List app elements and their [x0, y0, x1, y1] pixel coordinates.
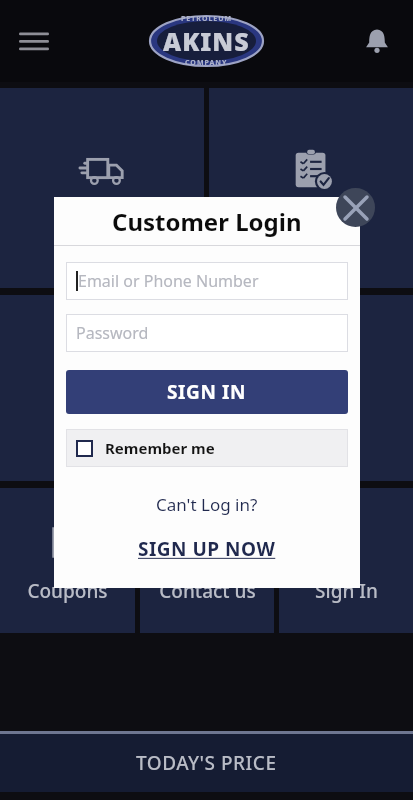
- button[interactable]: Notifications: [355, 19, 399, 63]
- button[interactable]: TODAY'S PRICE: [0, 734, 413, 792]
- button[interactable]: Delivery: [209, 88, 413, 288]
- staticText: Email or Phone Number: [78, 270, 259, 292]
- staticText: Remember me: [105, 438, 215, 458]
- button[interactable]: Remember me: [66, 429, 348, 467]
- staticText: Password: [76, 322, 149, 344]
- staticText: Service: [70, 205, 135, 231]
- button[interactable]: Sign In: [279, 488, 413, 633]
- button[interactable]: Close: [336, 188, 375, 227]
- staticText: Delivery: [274, 205, 349, 231]
- staticText: COMPANY: [185, 58, 228, 68]
- button[interactable]: SIGN UP NOW: [54, 536, 360, 562]
- button[interactable]: [209, 295, 413, 481]
- staticText: PETROLEUM: [181, 14, 233, 24]
- staticText: TODAY'S PRICE: [136, 750, 277, 776]
- staticText: Customer Login: [112, 205, 302, 238]
- staticText: Coupons: [27, 578, 108, 604]
- staticText: SIGN UP NOW: [138, 536, 276, 562]
- button[interactable]: Password: [66, 314, 348, 352]
- button[interactable]: [0, 295, 204, 481]
- button[interactable]: Contact us: [140, 488, 274, 633]
- button[interactable]: Coupons: [0, 488, 135, 633]
- button[interactable]: Can't Log in?: [54, 493, 360, 516]
- button[interactable]: Menu: [12, 19, 56, 63]
- staticText: SIGN IN: [167, 379, 247, 405]
- button[interactable]: SIGN IN: [66, 370, 348, 414]
- staticText: Sign In: [315, 578, 378, 604]
- button[interactable]: Service: [0, 88, 204, 288]
- staticText: Contact us: [159, 578, 256, 604]
- button[interactable]: Email or Phone Number: [66, 262, 348, 300]
- staticText: AKINS: [163, 24, 250, 58]
- staticText: Can't Log in?: [156, 493, 258, 516]
